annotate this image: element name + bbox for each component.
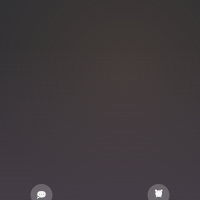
button[interactable]: Alarm [147,184,169,200]
button[interactable]: Messages [30,184,52,200]
